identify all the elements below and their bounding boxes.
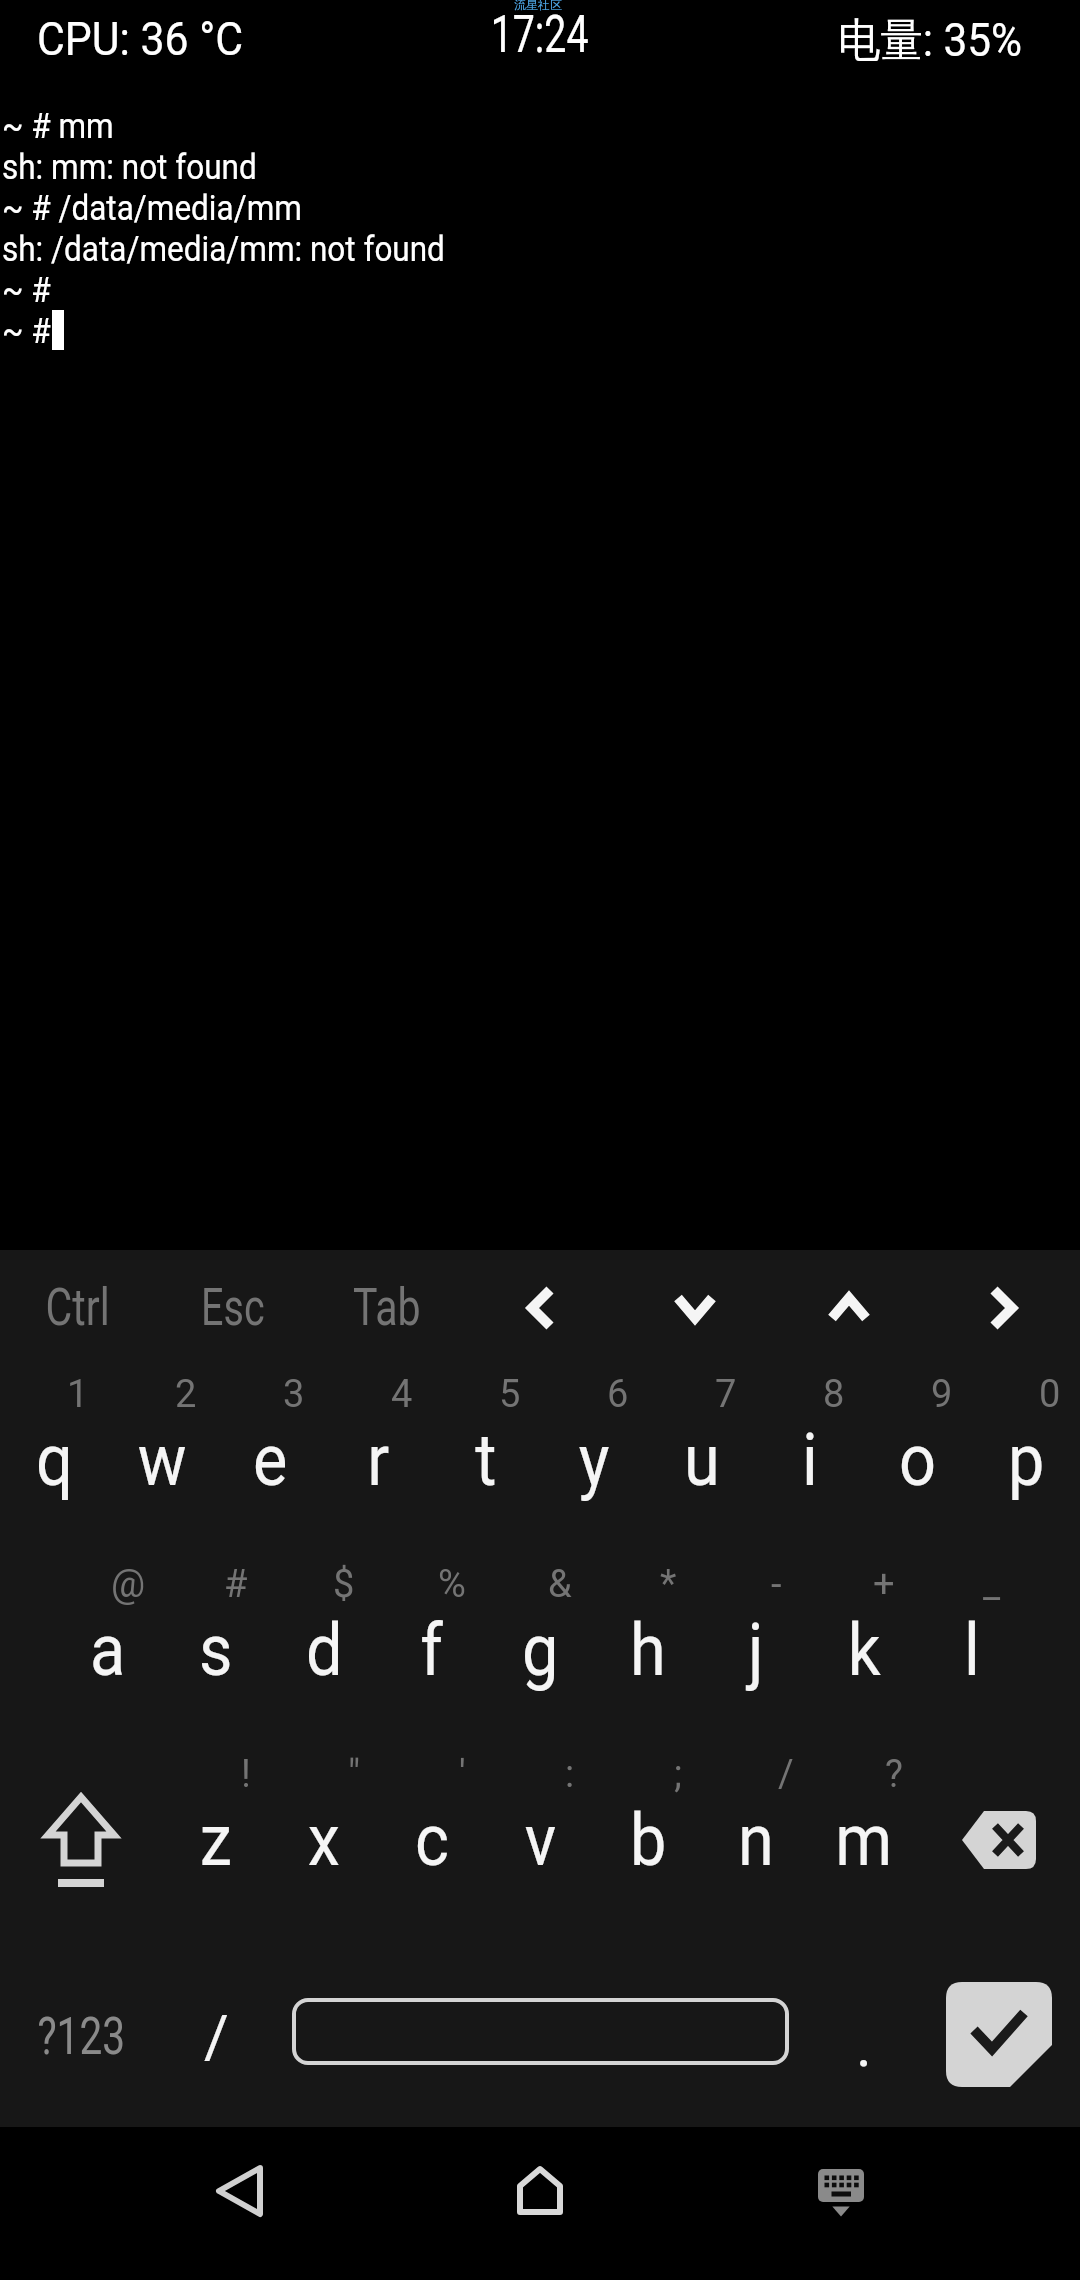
staticText: / — [778, 1752, 794, 1797]
staticText: & — [548, 1562, 572, 1607]
button[interactable] — [270, 1935, 810, 2127]
staticText: k — [848, 1608, 881, 1692]
staticText: u — [684, 1418, 720, 1502]
staticText: " — [348, 1752, 361, 1797]
staticText: v — [525, 1798, 556, 1882]
staticText: 17:24 — [491, 5, 589, 65]
staticText: Tab — [353, 1277, 421, 1338]
button[interactable]: f — [378, 1555, 486, 1745]
staticText: ? — [885, 1752, 903, 1797]
staticText: ?123 — [37, 2006, 125, 2067]
staticText: h — [630, 1608, 666, 1692]
button[interactable]: q — [0, 1365, 108, 1555]
button[interactable]: g — [486, 1555, 594, 1745]
button[interactable]: Esc — [155, 1250, 310, 1365]
button[interactable]: w — [108, 1365, 216, 1555]
button[interactable]: Ctrl — [0, 1250, 155, 1365]
staticText: 流星社区 — [514, 0, 562, 12]
button[interactable]: d — [270, 1555, 378, 1745]
staticText: r — [367, 1418, 390, 1502]
button[interactable]: y — [540, 1365, 648, 1555]
button[interactable]: k — [810, 1555, 918, 1745]
button[interactable]: j — [702, 1555, 810, 1745]
staticText: 8 — [823, 1372, 845, 1417]
button[interactable]: r — [324, 1365, 432, 1555]
button[interactable]: e — [216, 1365, 324, 1555]
staticText: s — [199, 1608, 233, 1692]
staticText: % — [438, 1562, 466, 1607]
staticText: @ — [111, 1562, 146, 1607]
staticText: / — [204, 2001, 229, 2071]
button[interactable]: b — [594, 1745, 702, 1935]
staticText: n — [738, 1798, 774, 1882]
button[interactable] — [199, 2151, 279, 2231]
staticText: b — [630, 1798, 667, 1882]
button[interactable]: a — [54, 1555, 162, 1745]
staticText: ~ # mm sh: mm: not found ~ # /data/media… — [2, 106, 446, 352]
staticText: CPU: 36 °C — [37, 12, 243, 66]
staticText: w — [138, 1418, 187, 1502]
button[interactable] — [772, 1250, 926, 1365]
button[interactable]: u — [648, 1365, 756, 1555]
staticText: 6 — [607, 1372, 629, 1417]
staticText: 4 — [391, 1372, 413, 1417]
staticText: p — [1008, 1418, 1045, 1502]
staticText: y — [579, 1418, 610, 1502]
button[interactable] — [918, 1935, 1080, 2127]
button[interactable]: t — [432, 1365, 540, 1555]
button[interactable]: m — [810, 1745, 918, 1935]
button[interactable] — [801, 2151, 881, 2231]
staticText: z — [200, 1798, 232, 1882]
button[interactable]: c — [378, 1745, 486, 1935]
staticText: 2 — [175, 1372, 197, 1417]
button[interactable]: . — [810, 1935, 918, 2127]
staticText: + — [873, 1562, 895, 1607]
staticText: c — [415, 1798, 449, 1882]
button[interactable] — [918, 1745, 1080, 1935]
staticText: m — [835, 1798, 893, 1882]
button[interactable]: i — [756, 1365, 864, 1555]
button[interactable]: o — [864, 1365, 972, 1555]
button[interactable]: z — [162, 1745, 270, 1935]
staticText: Ctrl — [46, 1277, 110, 1338]
staticText: 1 — [67, 1372, 89, 1417]
button[interactable]: ?123 — [0, 1935, 162, 2127]
staticText: 9 — [931, 1372, 953, 1417]
button[interactable]: Tab — [310, 1250, 464, 1365]
staticText: _ — [983, 1562, 1001, 1607]
staticText: o — [899, 1418, 937, 1502]
staticText: ' — [459, 1752, 466, 1797]
staticText: - — [771, 1562, 782, 1607]
staticText: a — [90, 1608, 126, 1692]
button[interactable]: v — [486, 1745, 594, 1935]
button[interactable]: p — [972, 1365, 1080, 1555]
button[interactable] — [500, 2151, 580, 2231]
button[interactable]: l — [918, 1555, 1026, 1745]
staticText: t — [475, 1418, 497, 1502]
staticText: d — [306, 1608, 343, 1692]
staticText: * — [660, 1562, 677, 1607]
button[interactable]: h — [594, 1555, 702, 1745]
staticText: i — [802, 1418, 818, 1502]
button[interactable]: s — [162, 1555, 270, 1745]
button[interactable] — [0, 1745, 162, 1935]
staticText: : — [565, 1752, 575, 1797]
staticText: 电量: 35% — [838, 12, 1022, 70]
staticText: # — [224, 1562, 248, 1607]
button[interactable]: / — [162, 1935, 270, 2127]
staticText: 3 — [283, 1372, 305, 1417]
button[interactable]: x — [270, 1745, 378, 1935]
staticText: 7 — [715, 1372, 737, 1417]
button[interactable] — [618, 1250, 772, 1365]
staticText: Esc — [201, 1277, 265, 1338]
button[interactable] — [926, 1250, 1080, 1365]
staticText: g — [522, 1608, 559, 1692]
staticText: f — [420, 1608, 444, 1692]
staticText: ; — [674, 1752, 683, 1797]
staticText: 5 — [499, 1372, 521, 1417]
staticText: . — [856, 2010, 872, 2080]
staticText: e — [253, 1418, 288, 1502]
button[interactable]: n — [702, 1745, 810, 1935]
staticText: $ — [333, 1562, 355, 1607]
button[interactable] — [464, 1250, 618, 1365]
